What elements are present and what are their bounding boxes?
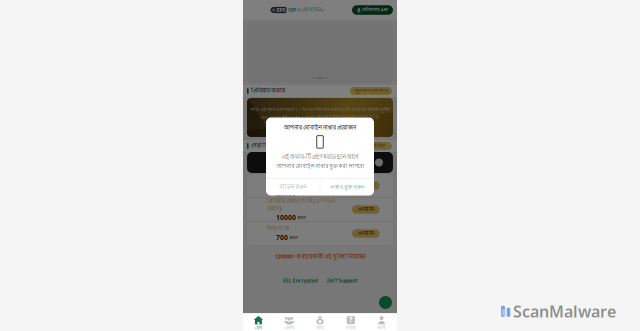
staticText: আজ এই অফার গ্রহণ করলে ১০ দিনে সর্বোচ্চ আ… bbox=[250, 107, 389, 113]
staticText: 25000 bbox=[276, 189, 296, 198]
staticText: হট ডিল bbox=[373, 143, 385, 149]
staticText: বাতিল করুন bbox=[279, 184, 306, 191]
staticText: প্রিমিয়াম অফার bbox=[251, 87, 285, 95]
staticText: ScanMalware bbox=[513, 301, 616, 322]
button[interactable]: স্টার প্যাক bbox=[246, 222, 393, 245]
button[interactable]: ডাউনলোড APP bbox=[352, 5, 393, 15]
button[interactable]: হোম bbox=[243, 313, 274, 331]
staticText: হোম bbox=[255, 325, 262, 331]
button[interactable]: নতুন আপডেট আছে bbox=[350, 87, 392, 95]
staticText: প্রিমিয়াম মেম্বার প্যাক (১০ দিনের মেয়া… bbox=[266, 197, 335, 213]
button[interactable]: রেফার bbox=[274, 313, 305, 331]
staticText: সাহায্য bbox=[346, 325, 356, 331]
staticText: এখনই নিন bbox=[358, 183, 374, 188]
button[interactable]: আমি bbox=[366, 313, 397, 331]
staticText: 10000 bbox=[276, 213, 296, 222]
staticText: আপনার মোবাইল নাম্বার প্রয়োজন bbox=[284, 124, 356, 132]
staticText: VIP0 bbox=[274, 6, 285, 14]
button[interactable]: ? bbox=[335, 313, 366, 331]
staticText: 700 bbox=[276, 233, 288, 242]
button[interactable]: হট ডিল bbox=[366, 142, 392, 150]
button[interactable]: ভিআইপি মেগা প্যাক (৩০ দিনের মেয়াদ) bbox=[246, 174, 393, 197]
staticText: স্টার প্যাক bbox=[266, 225, 289, 232]
staticText: 24/7 Support bbox=[326, 277, 357, 284]
staticText: এই অফার-টি গ্রহণ করতে হলে আগে bbox=[282, 153, 358, 161]
button[interactable]: আয় bbox=[305, 313, 335, 331]
staticText: 120000+ ব্যবহারকারী এই সুবিধা নিয়েছেন bbox=[274, 253, 365, 261]
button[interactable]: Chat support bbox=[379, 296, 392, 309]
staticText: আয় bbox=[316, 325, 323, 331]
staticText: এখনই নিন bbox=[358, 207, 374, 212]
staticText: আমি bbox=[378, 325, 386, 331]
staticText: রেফার bbox=[284, 325, 294, 331]
button[interactable]: প্রিমিয়াম মেম্বার প্যাক (১০ দিনের মেয়া… bbox=[246, 198, 393, 221]
staticText: এবং সব ধরণ WhatsApp গ্রুপে যোগ দিয়ে টাক… bbox=[261, 115, 379, 120]
button[interactable]: নাম্বার যুক্ত করুন bbox=[320, 179, 374, 196]
staticText: BDT bbox=[298, 191, 306, 196]
staticText: সেরা ডিল bbox=[251, 142, 273, 150]
staticText: ? bbox=[349, 314, 353, 325]
button[interactable]: VIP0 bbox=[270, 6, 324, 14]
staticText: এখনই নিন bbox=[358, 231, 374, 236]
staticText: নতুন আপডেট আছে bbox=[354, 88, 387, 94]
staticText: BDT bbox=[298, 215, 306, 220]
staticText: নাম্বার যুক্ত করুন bbox=[330, 184, 364, 191]
staticText: ভিআইপি মেগা প্যাক (৩০ দিনের মেয়াদ) bbox=[266, 173, 334, 189]
staticText: VIP এ যোগ দিন › bbox=[288, 6, 324, 14]
staticText: SSL Encrypted bbox=[282, 277, 317, 284]
staticText: BDT bbox=[290, 235, 298, 240]
staticText: আপনার মোবাইল নাম্বার যুক্ত করা লাগবে! bbox=[276, 162, 363, 170]
button[interactable]: বাতিল করুন bbox=[266, 179, 320, 196]
staticText: আর পাবেন বিশেষ বোনাস ও ফ্রি রিচার্জের অফ… bbox=[276, 122, 364, 128]
staticText: ডাউনলোড APP bbox=[362, 7, 388, 13]
